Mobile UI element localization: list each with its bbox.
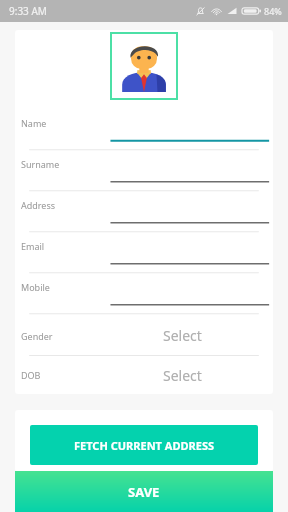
staticText: Name xyxy=(21,117,47,129)
staticText: Surname xyxy=(21,158,60,170)
staticText: Mobile xyxy=(21,281,50,293)
button[interactable]: FETCH CURRENT ADDRESS xyxy=(30,425,258,465)
staticText: 84% xyxy=(264,5,282,17)
button[interactable]: SAVE xyxy=(15,471,273,512)
staticText: DOB xyxy=(21,369,41,381)
staticText: Select xyxy=(163,326,202,345)
button[interactable]: Name xyxy=(15,110,273,151)
button[interactable]: Surname xyxy=(15,151,273,192)
staticText: Address xyxy=(21,199,56,211)
staticText: 9:33 AM xyxy=(9,4,47,18)
button[interactable]: Profile photo xyxy=(110,32,178,100)
button[interactable]: Email xyxy=(15,233,273,274)
button[interactable]: Gender xyxy=(15,315,273,356)
staticText: Gender xyxy=(21,330,53,342)
staticText: Email xyxy=(21,240,45,252)
staticText: FETCH CURRENT ADDRESS xyxy=(74,438,214,453)
button[interactable]: Address xyxy=(15,192,273,233)
button[interactable]: DOB xyxy=(15,356,273,394)
staticText: SAVE xyxy=(128,483,160,501)
button[interactable]: Mobile xyxy=(15,274,273,315)
staticText: Select xyxy=(163,366,202,385)
